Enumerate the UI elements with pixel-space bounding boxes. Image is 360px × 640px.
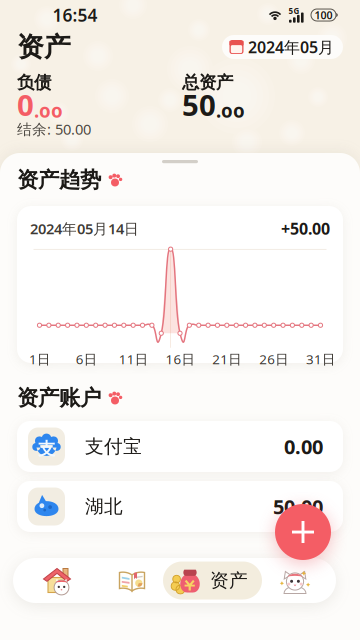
staticText: 1日 xyxy=(29,350,50,368)
staticText: 50 xyxy=(182,85,216,124)
staticText: 31日 xyxy=(306,350,335,368)
staticText: 0 xyxy=(17,85,34,124)
staticText: .oo xyxy=(34,98,63,123)
button[interactable]: 添加 xyxy=(275,504,331,560)
staticText: 6日 xyxy=(76,350,97,368)
staticText: 资产 xyxy=(210,569,248,592)
staticText: 湖北 xyxy=(85,495,123,518)
staticText: 50.00 xyxy=(273,493,323,520)
staticText: 资产趋势 xyxy=(17,167,101,193)
staticText: 结余: 50.00 xyxy=(17,119,91,139)
button[interactable]: 我的 xyxy=(267,558,323,603)
staticText: 26日 xyxy=(259,350,288,368)
staticText: 负债 xyxy=(17,72,51,93)
button[interactable]: 资产 xyxy=(163,561,262,599)
staticText: 资产账户 xyxy=(17,385,101,411)
staticText: 0.00 xyxy=(284,433,323,460)
staticText: 16:54 xyxy=(52,3,97,26)
button[interactable]: 支 xyxy=(17,421,343,472)
staticText: 16日 xyxy=(165,350,194,368)
staticText: 5G xyxy=(288,6,299,16)
staticText: 21日 xyxy=(212,350,241,368)
button[interactable]: 首页 xyxy=(29,558,85,603)
button[interactable]: 湖北 xyxy=(17,481,343,532)
staticText: +50.00 xyxy=(281,218,330,239)
staticText: 资产 xyxy=(17,31,71,63)
button[interactable]: 账本 xyxy=(104,558,160,603)
staticText: 总资产 xyxy=(182,72,233,93)
staticText: 11日 xyxy=(119,350,148,368)
staticText: 2024年05月14日 xyxy=(30,219,139,238)
button[interactable]: 2024年05月 xyxy=(222,35,343,59)
staticText: .oo xyxy=(216,98,245,123)
staticText: 支付宝 xyxy=(85,435,142,458)
staticText: 100 xyxy=(314,8,332,22)
staticText: 支 xyxy=(38,438,55,460)
staticText: 2024年05月 xyxy=(248,36,334,58)
